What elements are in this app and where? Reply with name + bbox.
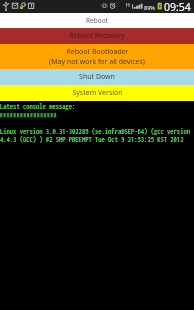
- button[interactable]: System Version: [0, 85, 194, 101]
- staticText: Reboot Recovery: [69, 31, 125, 41]
- button[interactable]: Reboot Bootloader: [0, 44, 194, 69]
- staticText: 89%: [144, 4, 155, 11]
- staticText: Reboot: [86, 16, 108, 25]
- button[interactable]: Reboot Recovery: [0, 28, 194, 44]
- staticText: Linux version 3.0.31-302285 (se.infra@SE…: [0, 127, 190, 136]
- staticText: Reboot Bootloader: [66, 47, 129, 57]
- staticText: Shut Down: [79, 72, 115, 82]
- staticText: 09:54: [164, 0, 191, 13]
- staticText: Latest console message:: [0, 102, 76, 111]
- staticText: H: [126, 2, 130, 9]
- staticText: System Version: [72, 88, 123, 98]
- staticText: (May not work for all devices): [49, 57, 145, 67]
- staticText: 4.4.3 (GCC) ) #2 SMP PREEMPT Tue Oct 9 2…: [0, 135, 184, 144]
- button[interactable]: Shut Down: [0, 69, 194, 85]
